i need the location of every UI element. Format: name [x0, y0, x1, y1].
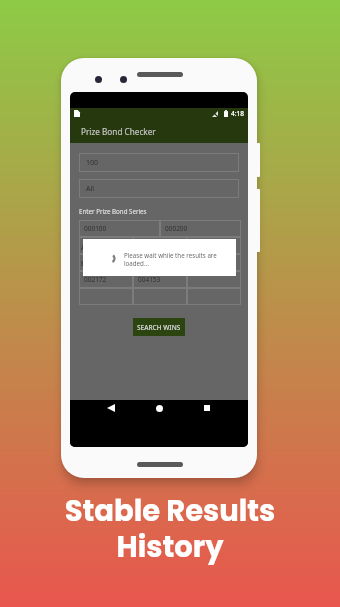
staticText: 4:18: [231, 109, 245, 118]
button[interactable]: All: [79, 179, 239, 198]
button[interactable]: SEARCH WINS: [133, 318, 185, 336]
staticText: ANNOUNCED WINNERS: [81, 243, 154, 252]
button[interactable]: 000100: [79, 220, 160, 237]
staticText: Prize Bond Checker: [81, 126, 156, 137]
staticText: 004153: [138, 275, 161, 284]
staticText: 002172: [84, 275, 107, 284]
button[interactable]: 002172: [79, 271, 133, 288]
button[interactable]: [187, 288, 241, 305]
button[interactable]: [187, 237, 241, 254]
button[interactable]: Back: [104, 401, 118, 415]
button[interactable]: [79, 288, 133, 305]
staticText: Enter: [81, 259, 98, 268]
staticText: SEARCH WINS: [137, 323, 181, 332]
staticText: 000100: [84, 224, 107, 233]
staticText: Please wait while the results are loaded…: [124, 251, 217, 267]
button[interactable]: 100: [79, 153, 239, 172]
staticText: 000200: [165, 224, 188, 233]
staticText: History: [0, 527, 340, 568]
button[interactable]: Home: [152, 401, 166, 415]
staticText: Stable Results: [0, 491, 340, 532]
button[interactable]: [187, 271, 241, 288]
button[interactable]: Recent apps: [200, 401, 214, 415]
button[interactable]: [79, 254, 133, 271]
button[interactable]: [133, 237, 187, 254]
button[interactable]: [133, 288, 187, 305]
button[interactable]: 004153: [133, 271, 187, 288]
staticText: 100: [86, 158, 99, 168]
staticText: Enter Prize Bond Series: [79, 207, 147, 215]
button[interactable]: [187, 254, 241, 271]
button[interactable]: 000200: [160, 220, 241, 237]
button[interactable]: [133, 254, 187, 271]
staticText: All: [86, 184, 95, 194]
button[interactable]: [79, 237, 133, 254]
